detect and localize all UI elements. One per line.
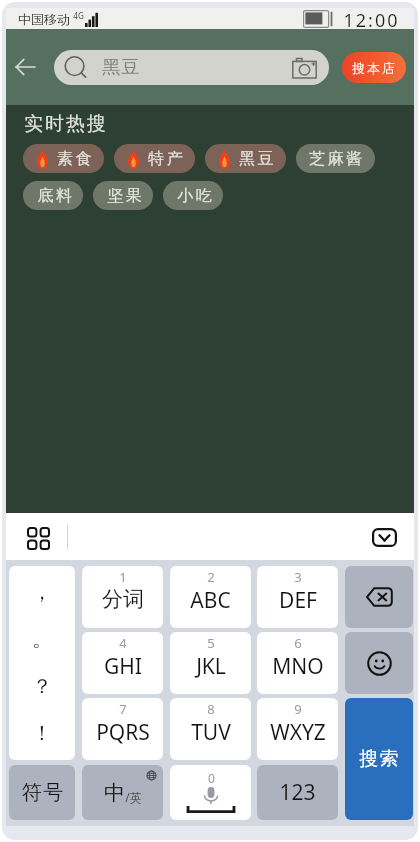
staticText: ！: [32, 721, 52, 746]
button[interactable]: 6: [257, 632, 338, 694]
staticText: ？: [32, 674, 52, 699]
button[interactable]: 123: [257, 765, 338, 820]
button[interactable]: 小吃: [163, 181, 223, 210]
staticText: 小吃: [176, 186, 213, 206]
staticText: 分词: [102, 586, 144, 612]
staticText: 0: [208, 770, 215, 786]
button[interactable]: 4: [82, 632, 163, 694]
button[interactable]: 芝麻酱: [296, 144, 375, 173]
staticText: ，: [32, 580, 52, 605]
button[interactable]: Back: [8, 45, 54, 89]
staticText: 4G: [73, 10, 84, 21]
staticText: 实时热搜: [23, 112, 107, 136]
staticText: 123: [279, 778, 316, 807]
staticText: TUV: [191, 718, 231, 747]
staticText: 8: [207, 700, 215, 718]
button[interactable]: Backspace: [345, 566, 413, 628]
staticText: 4: [119, 634, 127, 652]
staticText: 黑豆: [238, 149, 275, 169]
button[interactable]: 特产: [114, 144, 195, 173]
button[interactable]: 1: [82, 566, 163, 628]
staticText: MNO: [272, 652, 324, 681]
button[interactable]: 9: [257, 698, 338, 760]
button[interactable]: 7: [82, 698, 163, 760]
staticText: 坚果: [106, 186, 143, 206]
staticText: 2: [207, 568, 215, 586]
button[interactable]: 坚果: [93, 181, 153, 210]
button[interactable]: 搜索: [345, 698, 413, 820]
button[interactable]: 搜本店: [342, 52, 406, 83]
button[interactable]: 5: [170, 632, 251, 694]
staticText: JKL: [196, 652, 226, 681]
button[interactable]: Voice input: [170, 765, 251, 820]
staticText: 中: [104, 780, 125, 806]
button[interactable]: 黑豆: [205, 144, 286, 173]
staticText: 。: [32, 627, 52, 652]
staticText: 7: [119, 700, 127, 718]
staticText: 黑豆: [101, 56, 140, 79]
staticText: DEF: [279, 586, 317, 615]
button[interactable]: 黑豆: [54, 50, 329, 85]
staticText: 中国移动: [18, 11, 70, 27]
staticText: 3: [294, 568, 302, 586]
staticText: 6: [294, 634, 302, 652]
staticText: PQRS: [96, 718, 150, 747]
staticText: 5: [207, 634, 215, 652]
button[interactable]: Emoji: [345, 632, 413, 694]
staticText: 搜本店: [352, 60, 397, 76]
staticText: 特产: [147, 149, 184, 169]
staticText: 符号: [21, 780, 64, 805]
button[interactable]: 底料: [23, 181, 83, 210]
staticText: 芝麻酱: [309, 149, 365, 169]
button[interactable]: 8: [170, 698, 251, 760]
button[interactable]: 2: [170, 566, 251, 628]
button[interactable]: 素食: [23, 144, 104, 173]
staticText: 素食: [56, 149, 93, 169]
button[interactable]: 中: [82, 765, 163, 820]
staticText: /英: [125, 789, 142, 805]
button[interactable]: Hide keyboard: [365, 518, 403, 556]
staticText: GHI: [104, 652, 142, 681]
staticText: ABC: [190, 586, 231, 615]
button[interactable]: ，: [9, 566, 75, 760]
button[interactable]: 符号: [9, 765, 75, 820]
staticText: 9: [294, 700, 302, 718]
staticText: 1: [119, 568, 127, 586]
staticText: 搜索: [359, 747, 399, 771]
button[interactable]: Keyboard panel: [20, 520, 54, 554]
button[interactable]: 3: [257, 566, 338, 628]
staticText: 12:00: [343, 8, 400, 29]
staticText: 底料: [36, 186, 73, 206]
staticText: WXYZ: [270, 718, 326, 747]
button[interactable]: Scan: [290, 54, 318, 82]
